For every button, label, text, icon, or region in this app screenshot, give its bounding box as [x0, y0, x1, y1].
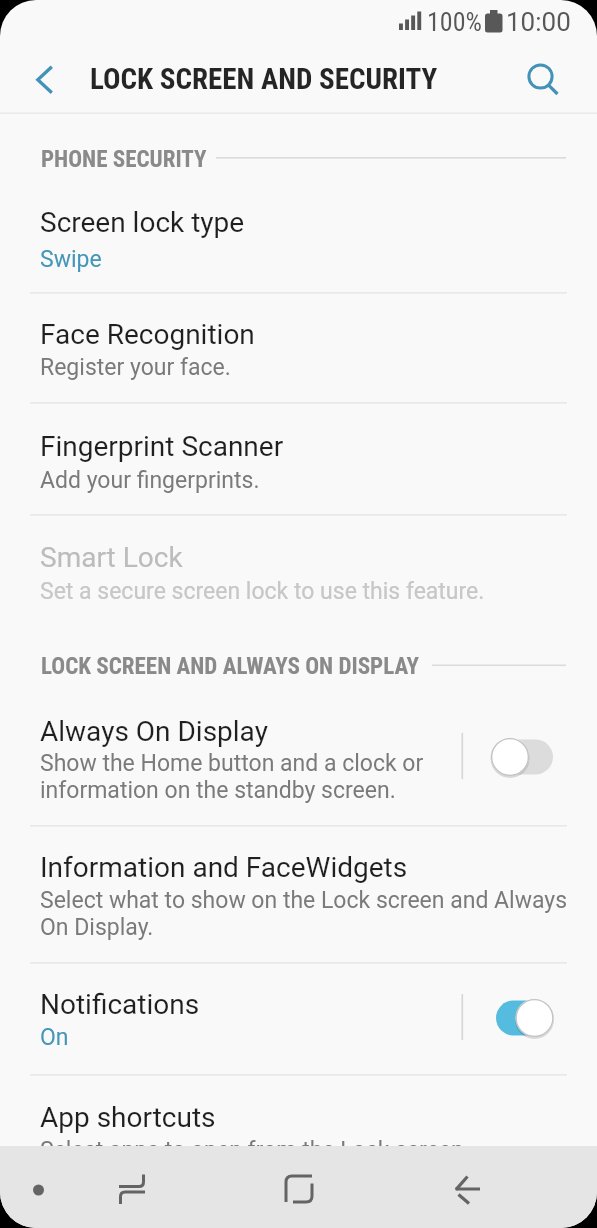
button[interactable]: Fingerprint Scanner — [0, 402, 597, 514]
staticText: Fingerprint Scanner — [40, 430, 284, 463]
staticText: Select what to show on the Lock screen a… — [40, 887, 568, 941]
staticText: On — [40, 1024, 69, 1051]
button[interactable] — [271, 1161, 327, 1217]
staticText: App shortcuts — [40, 1101, 216, 1134]
button[interactable] — [488, 993, 560, 1043]
staticText: Swipe — [40, 246, 102, 273]
button[interactable] — [17, 52, 73, 108]
staticText: Screen lock type — [40, 206, 245, 239]
button[interactable]: Notifications — [0, 962, 597, 1074]
button[interactable] — [103, 1161, 159, 1217]
staticText: 100% — [427, 7, 482, 37]
button[interactable]: Information and FaceWidgets — [0, 825, 597, 962]
staticText: Notifications — [40, 988, 200, 1021]
staticText: Add your fingerprints. — [40, 467, 260, 494]
button[interactable]: Smart Lock — [0, 514, 597, 632]
staticText: Smart Lock — [40, 541, 183, 574]
staticText: Always On Display — [40, 715, 268, 748]
button[interactable] — [488, 732, 560, 782]
button[interactable] — [512, 49, 568, 105]
staticText: LOCK SCREEN AND SECURITY — [90, 62, 438, 96]
staticText: Set a secure screen lock to use this fea… — [40, 578, 485, 605]
button[interactable]: Face Recognition — [0, 292, 597, 402]
staticText: Information and FaceWidgets — [40, 851, 408, 884]
staticText: LOCK SCREEN AND ALWAYS ON DISPLAY — [41, 653, 419, 680]
staticText: Face Recognition — [40, 318, 255, 351]
staticText: Select apps to open from the Lock screen — [40, 1137, 464, 1164]
staticText: 10:00 — [506, 7, 571, 37]
staticText: Register your face. — [40, 354, 231, 381]
button[interactable]: Always On Display — [0, 688, 597, 825]
staticText: PHONE SECURITY — [41, 146, 207, 173]
staticText: Show the Home button and a clock or info… — [40, 750, 424, 804]
button[interactable]: Screen lock type — [0, 180, 597, 292]
button[interactable]: App shortcuts — [0, 1074, 597, 1146]
button[interactable] — [439, 1161, 495, 1217]
